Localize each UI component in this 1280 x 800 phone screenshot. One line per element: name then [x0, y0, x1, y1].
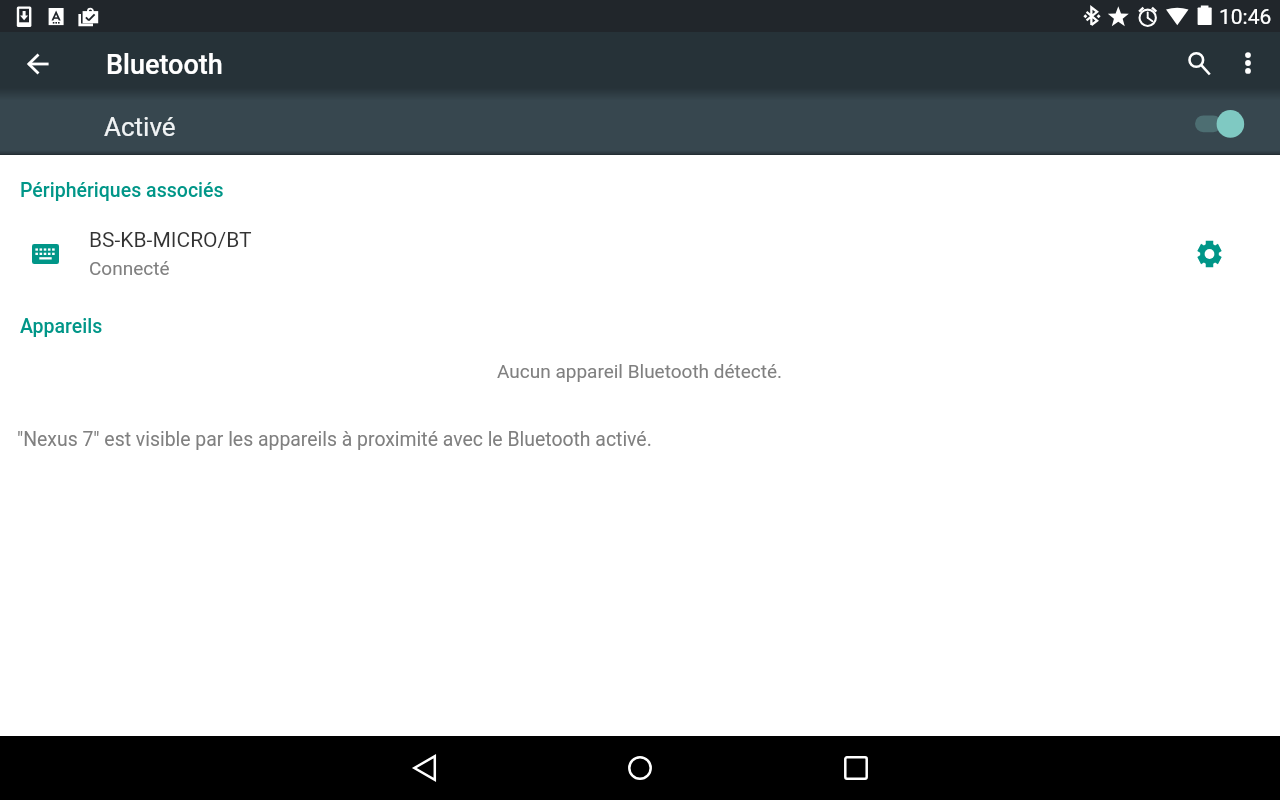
button[interactable]: Bluetooth on/off switch [1193, 108, 1247, 138]
button[interactable]: Search [1175, 39, 1223, 87]
button[interactable]: Back [392, 736, 456, 800]
staticText: Connecté [89, 257, 170, 279]
staticText: Périphériques associés [20, 179, 224, 202]
staticText: 10:46 [1219, 5, 1272, 30]
staticText: Bluetooth [106, 49, 223, 81]
staticText: Activé [104, 112, 176, 142]
staticText: "Nexus 7" est visible par les appareils … [17, 428, 652, 451]
button[interactable]: BS-KB-MICRO/BT [0, 221, 1280, 286]
button[interactable]: Navigate up [14, 40, 62, 88]
staticText: BS-KB-MICRO/BT [89, 228, 252, 253]
staticText: Aucun appareil Bluetooth détecté. [497, 360, 783, 382]
button[interactable]: Activé [0, 88, 1280, 155]
button[interactable]: More options [1224, 39, 1272, 87]
button[interactable]: Home [608, 736, 672, 800]
button[interactable]: Device settings [1185, 230, 1233, 278]
staticText: Appareils [20, 315, 103, 338]
button[interactable]: Recent apps [824, 736, 888, 800]
